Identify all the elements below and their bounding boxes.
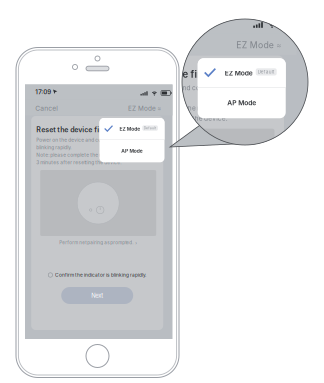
button[interactable]: AP Mode [99,147,187,178]
staticText: Next [163,220,175,227]
staticText: Default [159,129,176,134]
button[interactable]: Confirm the indicator is blinking rapidl… [120,199,230,207]
staticText: ≈ [158,105,162,112]
staticText: Confirm the indicator is blinking rapidl… [127,200,218,206]
button[interactable]: Cancel [35,102,59,114]
button[interactable]: Perform net pairing as prompted. › [112,167,228,174]
staticText: 3 minutes after resetting the device. [36,159,121,165]
staticText: EZ Mode [200,33,228,40]
staticText: Note: please complete the network distri… [36,152,162,158]
staticText: Reset the device first [36,125,108,134]
staticText: Confirm the indicator is blinking rapidl… [55,272,146,278]
staticText: Cancel [35,104,58,112]
staticText: blinking rapidly. [36,144,71,150]
button[interactable]: EZ Mode [128,102,162,114]
staticText: Power on the device and confirm that ind… [36,137,151,143]
staticText: Next [91,292,103,299]
staticText: Note: please complete the network distri… [108,80,234,86]
staticText: AP Mode [129,158,158,167]
staticText: Power on the device and confirm that ind… [108,65,223,71]
staticText: AP Mode [201,87,230,95]
staticText: EZ Mode [198,57,226,65]
button[interactable]: Confirm the indicator is blinking rapidl… [48,271,158,279]
staticText: Reset the device first [108,54,180,62]
button[interactable]: Perform net pairing as prompted. › [40,239,156,246]
button[interactable]: Next [61,287,133,304]
staticText: EZ Mode [128,104,156,112]
staticText: 3 minutes after resetting the device. [108,88,193,94]
button[interactable]: Next [133,215,205,232]
button[interactable]: EZ Mode [99,118,187,147]
staticText: 17:09 [35,88,51,96]
staticText: Default [231,57,248,63]
staticText: EZ Mode [126,129,154,137]
staticText: Perform net pairing as prompted. › [59,240,137,245]
button[interactable]: AP Mode [171,75,259,106]
staticText: Perform net pairing as prompted. › [131,168,209,174]
button[interactable]: EZ Mode [200,31,234,43]
button[interactable]: EZ Mode [171,46,259,75]
